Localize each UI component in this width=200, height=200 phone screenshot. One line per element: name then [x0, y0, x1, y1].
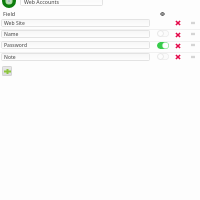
button[interactable]: Delete Password: [173, 41, 183, 51]
staticText: Note: [4, 54, 16, 61]
button[interactable]: Reorder Web Site: [188, 18, 198, 28]
staticText: Web Site: [4, 20, 25, 27]
button[interactable]: Reorder Name: [188, 29, 198, 39]
button[interactable]: Off: [157, 30, 169, 37]
button[interactable]: Delete Web Site: [173, 18, 183, 28]
button[interactable]: Category icon: [2, 0, 16, 8]
button[interactable]: On: [157, 42, 169, 49]
button[interactable]: Reorder Password: [188, 40, 198, 50]
button[interactable]: Delete Note: [173, 52, 183, 62]
button[interactable]: Toggle visibility: [158, 9, 167, 18]
button[interactable]: Add field: [2, 66, 12, 76]
staticText: Name: [4, 31, 19, 38]
button[interactable]: Reorder Note: [188, 52, 198, 62]
button[interactable]: Delete Name: [173, 30, 183, 40]
button[interactable]: [0, 29, 200, 40]
staticText: Field: [3, 10, 16, 17]
staticText: Password: [4, 42, 27, 49]
staticText: Web Accounts: [24, 0, 59, 5]
button[interactable]: [0, 17, 200, 28]
button[interactable]: Off: [157, 53, 169, 60]
button[interactable]: [0, 51, 200, 62]
button[interactable]: [0, 40, 200, 51]
